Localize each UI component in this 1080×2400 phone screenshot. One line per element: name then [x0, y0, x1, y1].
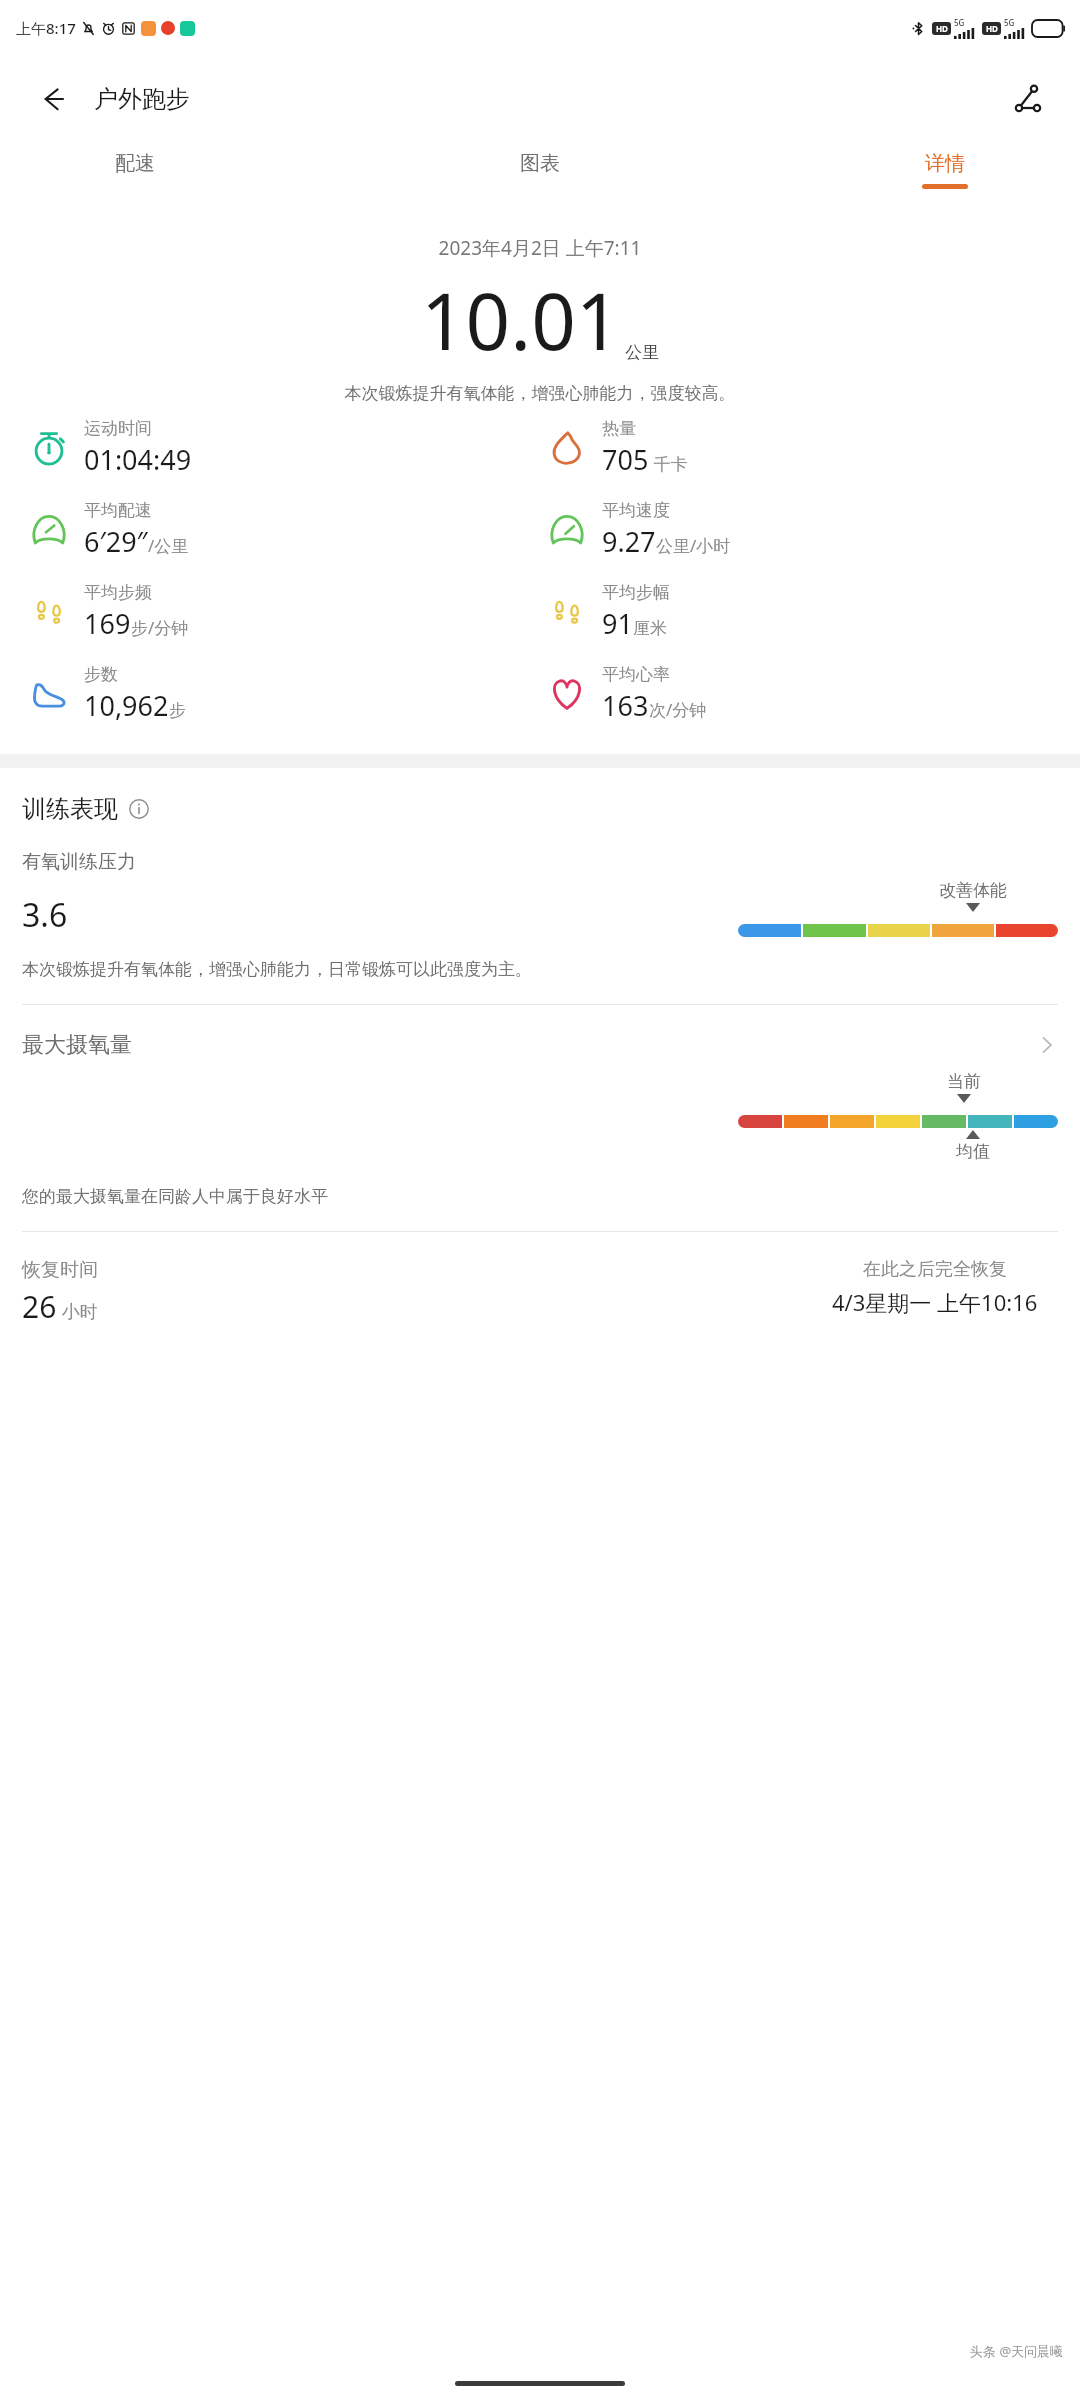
staticText: 163: [602, 687, 649, 724]
other: Info: [128, 798, 150, 820]
staticText: 步/分钟: [131, 616, 189, 639]
staticText: 本次锻炼提升有氧体能，增强心肺能力，日常锻炼可以此强度为主。: [22, 959, 532, 980]
staticText: 平均步幅: [602, 582, 670, 603]
staticText: 小时: [57, 1299, 98, 1324]
staticText: 次/分钟: [649, 698, 707, 721]
staticText: 169: [84, 605, 131, 642]
staticText: 配速: [115, 151, 155, 176]
staticText: 平均配速: [84, 500, 152, 521]
staticText: 9.27: [602, 523, 656, 560]
button[interactable]: 训练表现: [22, 794, 150, 824]
staticText: 6′29″: [84, 523, 148, 560]
staticText: 详情: [925, 151, 965, 176]
staticText: 10,962: [84, 687, 169, 724]
button[interactable]: 平均配速: [22, 498, 540, 562]
staticText: 当前: [947, 1071, 981, 1092]
staticText: 有氧训练压力: [22, 850, 136, 874]
staticText: 10.01: [421, 267, 621, 373]
staticText: HD: [986, 23, 998, 34]
button[interactable]: 平均速度: [540, 498, 1058, 562]
staticText: 均值: [956, 1141, 990, 1162]
staticText: /公里: [148, 534, 189, 557]
staticText: 705: [602, 441, 649, 478]
staticText: 您的最大摄氧量在同龄人中属于良好水平: [22, 1186, 328, 1207]
staticText: 头条 @天问晨曦: [970, 2342, 1064, 2360]
staticText: 5G: [1004, 17, 1015, 28]
button[interactable]: Back: [32, 77, 190, 121]
button[interactable]: 步数: [22, 662, 540, 726]
staticText: 平均心率: [602, 664, 670, 685]
staticText: 本次锻炼提升有氧体能，增强心肺能力，强度较高。: [0, 383, 1080, 404]
staticText: 热量: [602, 418, 636, 439]
staticText: 恢复时间: [22, 1258, 98, 1282]
staticText: 4/3星期一 上午10:16: [832, 1287, 1038, 1317]
staticText: 步: [169, 700, 186, 721]
button[interactable]: 热量: [540, 416, 1058, 480]
staticText: 户外跑步: [94, 84, 190, 114]
staticText: 千卡: [649, 452, 688, 475]
button[interactable]: 平均心率: [540, 662, 1058, 726]
staticText: 厘米: [633, 618, 667, 639]
staticText: 公里/小时: [656, 534, 731, 557]
staticText: 训练表现: [22, 794, 118, 824]
staticText: 5G: [954, 17, 965, 28]
other: Open: [1036, 1034, 1058, 1056]
button[interactable]: 平均步频: [22, 580, 540, 644]
staticText: 91: [602, 605, 633, 642]
staticText: 公里: [625, 342, 659, 363]
button[interactable]: 图表: [465, 143, 615, 197]
button[interactable]: 详情: [870, 143, 1020, 197]
button[interactable]: 平均步幅: [540, 580, 1058, 644]
staticText: 01:04:49: [84, 441, 192, 478]
staticText: 平均步频: [84, 582, 152, 603]
button[interactable]: Share: [1004, 75, 1052, 123]
staticText: 运动时间: [84, 418, 152, 439]
staticText: 2023年4月2日 上午7:11: [0, 235, 1080, 261]
staticText: 最大摄氧量: [22, 1031, 132, 1059]
staticText: 平均速度: [602, 500, 670, 521]
other: Back: [32, 77, 76, 121]
staticText: 上午8:17: [16, 18, 76, 38]
staticText: 3.6: [22, 893, 68, 937]
staticText: 26: [22, 1286, 57, 1327]
staticText: HD: [936, 23, 948, 34]
button[interactable]: 配速: [60, 143, 210, 197]
staticText: 在此之后完全恢复: [863, 1258, 1007, 1281]
staticText: 步数: [84, 664, 118, 685]
staticText: 改善体能: [939, 880, 1007, 901]
button[interactable]: 运动时间: [22, 416, 540, 480]
staticText: 图表: [520, 151, 560, 176]
button[interactable]: 最大摄氧量: [22, 1031, 1058, 1059]
